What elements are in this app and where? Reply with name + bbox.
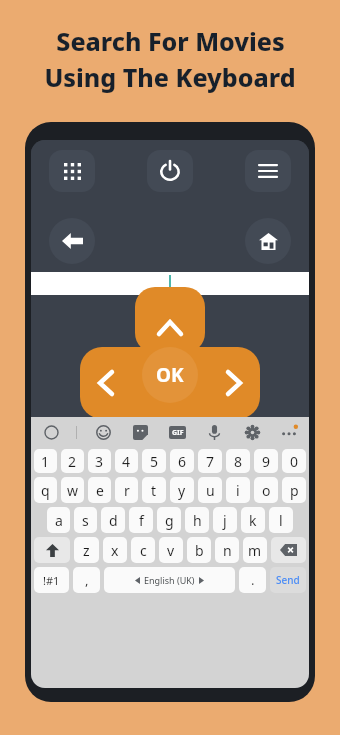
staticText: u — [206, 481, 215, 500]
button[interactable]: Translate — [39, 420, 63, 444]
button[interactable]: English (UK) — [104, 567, 235, 593]
staticText: d — [109, 511, 118, 530]
staticText: 0 — [290, 452, 299, 471]
button[interactable]: 0 — [282, 449, 306, 473]
staticText: 5 — [150, 452, 159, 471]
staticText: Search For Movies — [56, 24, 285, 58]
button[interactable]: d — [101, 507, 125, 533]
staticText: o — [262, 481, 271, 500]
button[interactable]: Backspace — [271, 537, 306, 563]
staticText: y — [178, 481, 186, 500]
staticText: z — [83, 541, 90, 560]
button[interactable]: !#1 — [34, 567, 69, 593]
button[interactable]: z — [74, 537, 99, 563]
button[interactable]: 8 — [226, 449, 250, 473]
staticText: 9 — [262, 452, 271, 471]
button[interactable]: 7 — [198, 449, 222, 473]
button[interactable]: n — [215, 537, 239, 563]
button[interactable]: . — [239, 567, 266, 593]
staticText: OK — [156, 362, 184, 388]
button[interactable]: x — [103, 537, 127, 563]
button[interactable]: v — [159, 537, 183, 563]
button[interactable]: Settings — [240, 420, 264, 444]
staticText: i — [236, 481, 240, 500]
button[interactable]: Voice input — [202, 420, 226, 444]
staticText: p — [290, 481, 299, 500]
button[interactable]: OK — [142, 347, 198, 403]
button[interactable]: 4 — [115, 449, 138, 473]
button[interactable]: b — [187, 537, 211, 563]
button[interactable]: r — [115, 477, 138, 503]
staticText: 6 — [178, 452, 187, 471]
button[interactable]: g — [157, 507, 181, 533]
button[interactable]: 1 — [34, 449, 57, 473]
button[interactable]: , — [73, 567, 100, 593]
staticText: Send — [276, 573, 300, 587]
button[interactable]: Left — [80, 347, 132, 419]
staticText: v — [167, 541, 175, 560]
button[interactable]: Menu — [245, 150, 291, 192]
button[interactable]: s — [74, 507, 97, 533]
button[interactable]: More — [277, 420, 301, 444]
staticText: 8 — [234, 452, 243, 471]
button[interactable]: Power — [147, 150, 193, 192]
button[interactable]: Back — [49, 218, 95, 264]
button[interactable]: 5 — [142, 449, 166, 473]
staticText: f — [139, 511, 144, 530]
button[interactable]: f — [129, 507, 153, 533]
button[interactable]: o — [254, 477, 278, 503]
button[interactable]: a — [47, 507, 70, 533]
button[interactable]: u — [198, 477, 222, 503]
button[interactable]: Stickers — [128, 420, 152, 444]
staticText: q — [41, 481, 50, 500]
staticText: b — [195, 541, 204, 560]
button[interactable]: e — [88, 477, 111, 503]
button[interactable]: y — [170, 477, 194, 503]
button[interactable]: h — [185, 507, 209, 533]
button[interactable]: m — [243, 537, 267, 563]
staticText: c — [140, 541, 147, 560]
button[interactable]: p — [282, 477, 306, 503]
button[interactable]: w — [61, 477, 84, 503]
button[interactable]: Apps — [49, 150, 95, 192]
button[interactable]: Shift — [34, 537, 70, 563]
button[interactable]: 6 — [170, 449, 194, 473]
button[interactable]: GIF — [165, 420, 189, 444]
staticText: Using The Keyboard — [44, 60, 296, 94]
button[interactable]: 3 — [88, 449, 111, 473]
staticText: 1 — [41, 452, 50, 471]
staticText: a — [55, 511, 63, 530]
staticText: n — [223, 541, 232, 560]
button[interactable]: l — [269, 507, 293, 533]
button[interactable]: k — [241, 507, 265, 533]
button[interactable]: Right — [208, 347, 260, 419]
button[interactable]: Emoji — [91, 420, 115, 444]
button[interactable]: Home — [245, 218, 291, 264]
button[interactable]: 2 — [61, 449, 84, 473]
staticText: l — [279, 511, 283, 530]
staticText: 4 — [122, 452, 131, 471]
staticText: r — [124, 481, 130, 500]
button[interactable]: t — [142, 477, 166, 503]
staticText: g — [165, 511, 174, 530]
staticText: j — [223, 511, 227, 530]
staticText: 2 — [68, 452, 77, 471]
staticText: k — [249, 511, 257, 530]
staticText: m — [248, 541, 262, 560]
button[interactable]: 9 — [254, 449, 278, 473]
button[interactable]: c — [131, 537, 155, 563]
button[interactable]: Up — [135, 287, 205, 353]
staticText: 3 — [95, 452, 104, 471]
staticText: . — [251, 571, 255, 589]
staticText: x — [111, 541, 119, 560]
staticText: w — [67, 481, 79, 500]
staticText: h — [193, 511, 202, 530]
staticText: , — [85, 571, 89, 589]
button[interactable]: j — [213, 507, 237, 533]
button[interactable]: q — [34, 477, 57, 503]
button[interactable]: Send — [270, 567, 306, 593]
button[interactable]: i — [226, 477, 250, 503]
staticText: e — [96, 481, 104, 500]
staticText: English (UK) — [144, 574, 195, 586]
staticText: !#1 — [43, 573, 60, 588]
